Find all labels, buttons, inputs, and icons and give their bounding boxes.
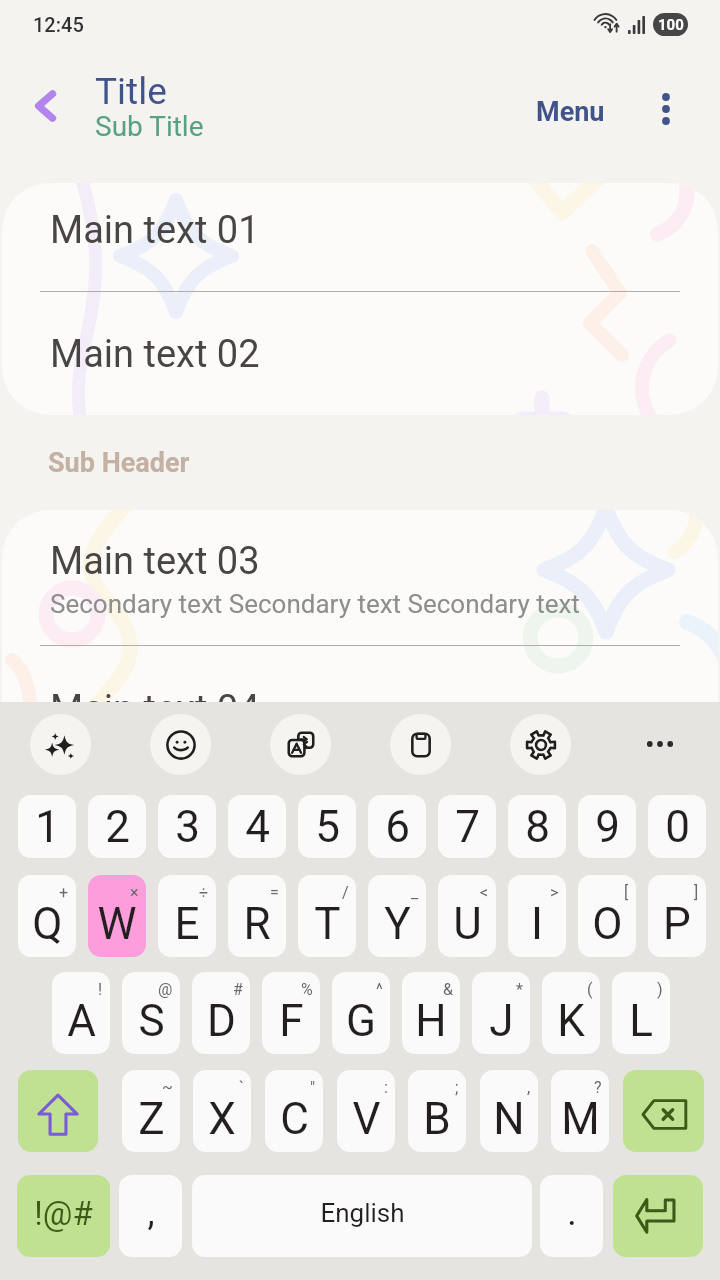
button[interactable]: F bbox=[262, 972, 320, 1054]
button[interactable]: C bbox=[265, 1070, 323, 1152]
staticText: 4 bbox=[245, 801, 270, 853]
staticText: + bbox=[59, 883, 69, 902]
button[interactable]: A bbox=[52, 972, 110, 1054]
button[interactable]: More options bbox=[628, 712, 692, 776]
button[interactable]: B bbox=[408, 1070, 466, 1152]
button[interactable]: More options bbox=[637, 80, 695, 138]
button[interactable]: Main text 02 bbox=[2, 292, 718, 415]
staticText: / bbox=[342, 883, 349, 902]
staticText: D bbox=[207, 995, 236, 1047]
button[interactable]: Q bbox=[18, 875, 76, 957]
staticText: ; bbox=[455, 1078, 459, 1097]
button[interactable]: 3 bbox=[158, 795, 216, 858]
staticText: = bbox=[270, 883, 279, 902]
button[interactable]: sparkle bbox=[30, 714, 91, 775]
button[interactable]: Shift bbox=[18, 1070, 98, 1152]
button[interactable]: G bbox=[332, 972, 390, 1054]
button[interactable]: !@# bbox=[17, 1175, 110, 1257]
staticText: Sub Title bbox=[95, 110, 204, 143]
button[interactable]: M bbox=[551, 1070, 609, 1152]
staticText: L bbox=[629, 995, 653, 1047]
button[interactable]: Main text 04 bbox=[2, 646, 718, 732]
staticText: 12:45 bbox=[33, 13, 84, 36]
staticText: # bbox=[233, 980, 243, 999]
staticText: Secondary text Secondary text Secondary … bbox=[50, 589, 580, 619]
button[interactable]: L bbox=[612, 972, 670, 1054]
staticText: _ bbox=[411, 883, 419, 902]
staticText: ) bbox=[657, 980, 663, 999]
staticText: R bbox=[243, 898, 271, 950]
staticText: ? bbox=[594, 1078, 602, 1097]
staticText: ÷ bbox=[199, 883, 209, 902]
staticText: English bbox=[320, 1198, 405, 1228]
staticText: Main text 02 bbox=[50, 332, 260, 377]
button[interactable]: smile bbox=[150, 714, 211, 775]
button[interactable]: O bbox=[578, 875, 636, 957]
button[interactable]: Z bbox=[122, 1070, 180, 1152]
button[interactable]: 6 bbox=[368, 795, 426, 858]
button[interactable]: X bbox=[193, 1070, 251, 1152]
button[interactable]: Main text 03 bbox=[2, 510, 718, 645]
staticText: M bbox=[561, 1093, 600, 1145]
staticText: , bbox=[527, 1078, 531, 1097]
button[interactable]: settings bbox=[510, 714, 571, 775]
staticText: " bbox=[310, 1078, 316, 1097]
staticText: 1 bbox=[35, 801, 60, 853]
staticText: I bbox=[531, 898, 543, 950]
staticText: Main text 03 bbox=[50, 539, 260, 584]
button[interactable]: 5 bbox=[298, 795, 356, 858]
button[interactable]: 0 bbox=[648, 795, 706, 858]
button[interactable]: Backspace bbox=[623, 1070, 704, 1152]
staticText: F bbox=[279, 995, 304, 1047]
staticText: × bbox=[130, 883, 139, 902]
button[interactable]: 1 bbox=[18, 795, 76, 858]
staticText: !@# bbox=[34, 1194, 93, 1233]
button[interactable]: R bbox=[228, 875, 286, 957]
button[interactable]: 8 bbox=[508, 795, 566, 858]
staticText: N bbox=[493, 1093, 525, 1145]
staticText: ^ bbox=[376, 980, 383, 999]
button[interactable]: T bbox=[298, 875, 356, 957]
staticText: % bbox=[301, 980, 313, 999]
staticText: S bbox=[138, 995, 165, 1047]
button[interactable]: 7 bbox=[438, 795, 496, 858]
staticText: * bbox=[516, 980, 523, 999]
button[interactable]: Back bbox=[12, 73, 78, 139]
staticText: & bbox=[443, 980, 453, 999]
button[interactable]: translate bbox=[270, 714, 331, 775]
staticText: E bbox=[174, 898, 200, 950]
staticText: P bbox=[663, 898, 691, 950]
button[interactable]: H bbox=[402, 972, 460, 1054]
button[interactable]: , bbox=[119, 1175, 182, 1257]
button[interactable]: E bbox=[158, 875, 216, 957]
other: Enter bbox=[630, 1188, 686, 1244]
button[interactable]: K bbox=[542, 972, 600, 1054]
button[interactable]: W bbox=[88, 875, 146, 957]
button[interactable]: J bbox=[472, 972, 530, 1054]
button[interactable]: V bbox=[337, 1070, 395, 1152]
staticText: ` bbox=[239, 1078, 244, 1097]
staticText: U bbox=[453, 898, 482, 950]
staticText: Menu bbox=[536, 96, 605, 128]
staticText: G bbox=[346, 995, 376, 1047]
button[interactable]: S bbox=[122, 972, 180, 1054]
button[interactable]: N bbox=[480, 1070, 538, 1152]
button[interactable]: clipboard bbox=[390, 714, 451, 775]
staticText: J bbox=[489, 995, 514, 1047]
button[interactable]: English bbox=[192, 1175, 532, 1257]
button[interactable]: Main text 01 bbox=[2, 183, 718, 291]
button[interactable]: D bbox=[192, 972, 250, 1054]
button[interactable]: I bbox=[508, 875, 566, 957]
button[interactable]: U bbox=[438, 875, 496, 957]
button[interactable]: 2 bbox=[88, 795, 146, 858]
staticText: 9 bbox=[595, 801, 620, 853]
button[interactable]: . bbox=[540, 1175, 603, 1257]
button[interactable]: Enter bbox=[613, 1175, 703, 1257]
button[interactable]: Y bbox=[368, 875, 426, 957]
button[interactable]: 9 bbox=[578, 795, 636, 858]
button[interactable]: Menu bbox=[532, 77, 609, 147]
button[interactable]: 4 bbox=[228, 795, 286, 858]
staticText: 8 bbox=[525, 801, 550, 853]
other: Backspace bbox=[636, 1083, 692, 1139]
button[interactable]: P bbox=[648, 875, 706, 957]
